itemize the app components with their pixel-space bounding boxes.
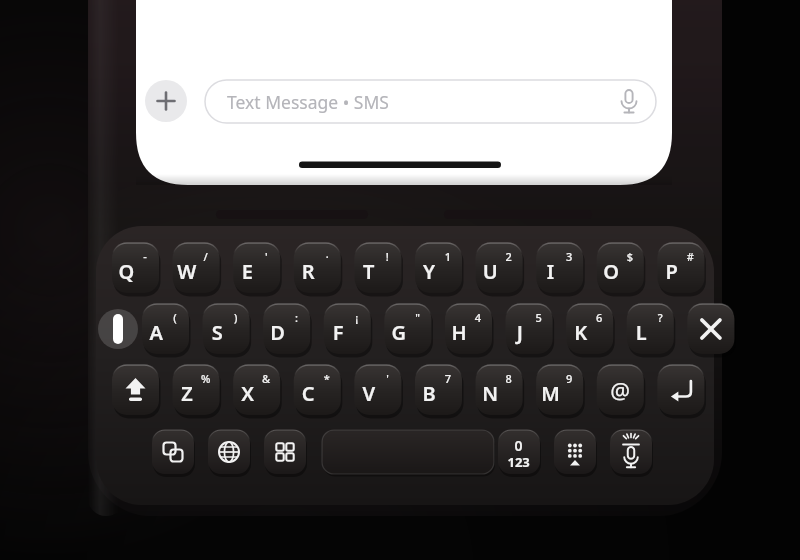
button[interactable]: Dictate message xyxy=(611,82,649,120)
button[interactable]: Backspace xyxy=(687,304,734,354)
button[interactable]: L xyxy=(626,304,673,354)
button[interactable]: X xyxy=(233,365,280,415)
button[interactable]: Change language xyxy=(208,430,250,474)
button[interactable]: Shift xyxy=(112,365,159,415)
button[interactable]: D xyxy=(263,304,310,354)
button[interactable]: Q xyxy=(112,243,159,293)
button[interactable]: U xyxy=(475,243,522,293)
button[interactable]: W xyxy=(172,243,219,293)
button[interactable]: R xyxy=(293,243,340,293)
button[interactable]: Enter xyxy=(657,365,704,415)
button[interactable]: G xyxy=(384,304,431,354)
button[interactable]: P xyxy=(657,243,704,293)
button[interactable]: O xyxy=(596,243,643,293)
button[interactable]: J xyxy=(505,304,552,354)
button[interactable]: Copy and paste xyxy=(152,430,194,474)
button[interactable]: App launcher xyxy=(264,430,306,474)
button[interactable]: At sign xyxy=(596,365,643,415)
button[interactable]: H xyxy=(445,304,492,354)
button[interactable]: Y xyxy=(415,243,462,293)
button[interactable]: I xyxy=(536,243,583,293)
button[interactable]: Keyboard settings xyxy=(554,430,596,474)
button[interactable]: Z xyxy=(172,365,219,415)
button[interactable]: Space xyxy=(322,430,494,474)
button[interactable]: Text Message SMS input field xyxy=(205,80,656,123)
button[interactable]: A xyxy=(142,304,189,354)
button[interactable]: K xyxy=(566,304,613,354)
button[interactable]: F xyxy=(323,304,370,354)
button[interactable]: C xyxy=(293,365,340,415)
button[interactable]: B xyxy=(415,365,462,415)
button[interactable]: M xyxy=(536,365,583,415)
button[interactable]: Voice input xyxy=(610,430,652,474)
button[interactable]: E xyxy=(233,243,280,293)
button[interactable]: V xyxy=(354,365,401,415)
button[interactable]: S xyxy=(202,304,249,354)
button[interactable]: N xyxy=(475,365,522,415)
button[interactable]: Add attachment xyxy=(145,80,187,122)
button[interactable]: T xyxy=(354,243,401,293)
button[interactable]: Numbers and symbols xyxy=(498,430,540,474)
